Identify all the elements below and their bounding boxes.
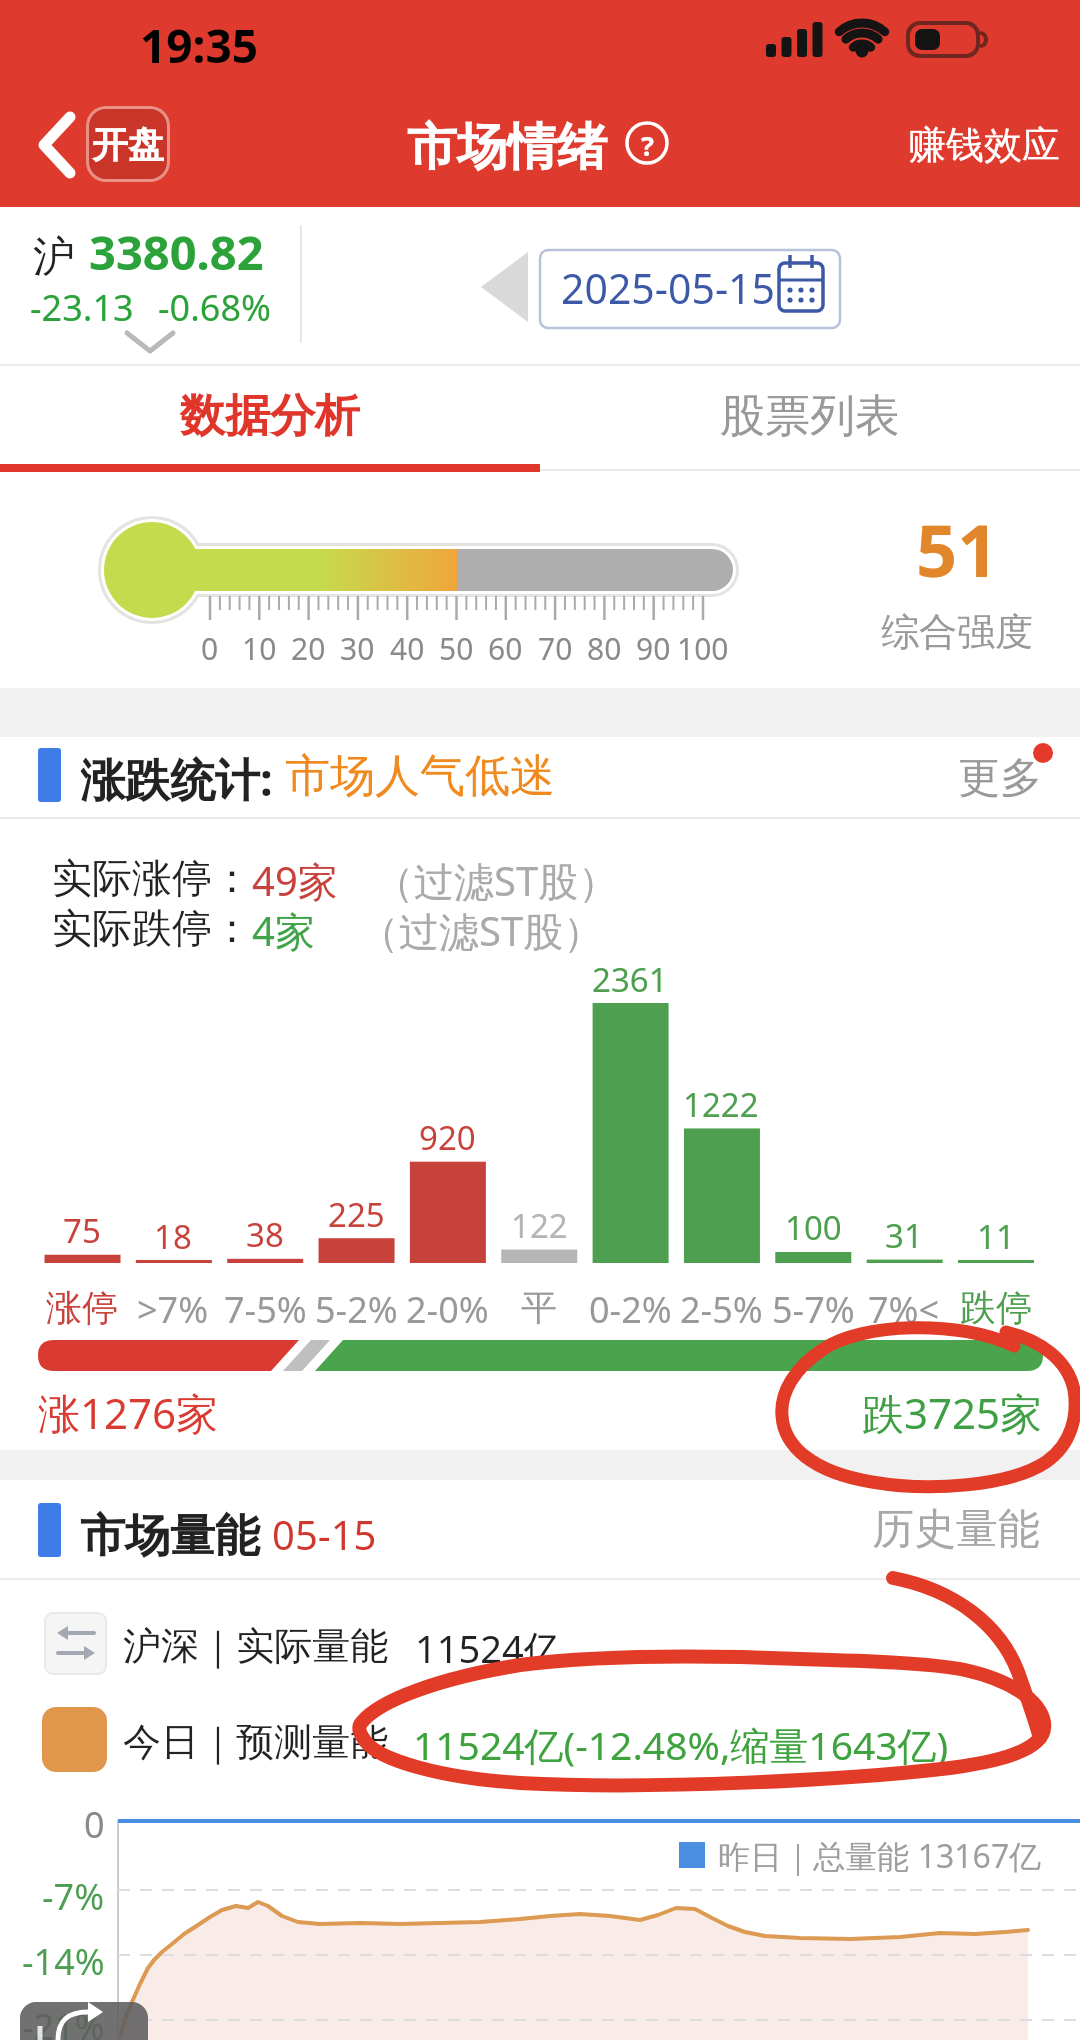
staticText: -0.68%	[158, 283, 271, 332]
staticText: 实际涨停：	[52, 853, 252, 903]
staticText: 3380.82	[89, 220, 264, 284]
staticText: >7%	[137, 1285, 209, 1334]
staticText: 31	[885, 1213, 923, 1258]
staticText: 沪深｜实际量能	[123, 1622, 389, 1670]
staticText: 涨1276家	[38, 1384, 219, 1441]
staticText: 11524亿	[415, 1622, 562, 1674]
button[interactable]: 开盘	[89, 109, 167, 179]
staticText: 跌停	[960, 1285, 1032, 1330]
staticText: 38	[246, 1212, 284, 1257]
staticText: 18	[154, 1214, 192, 1259]
staticText: 19:35	[140, 14, 259, 77]
staticText: （过滤ST股）	[374, 853, 619, 908]
staticText: 昨日｜总量能 13167亿	[718, 1834, 1042, 1878]
staticText: 跌3725家	[862, 1384, 1043, 1441]
staticText: 0	[84, 1800, 105, 1849]
staticText: （过滤ST股）	[359, 903, 604, 958]
staticText: 0-2%	[589, 1285, 672, 1334]
staticText: 数据分析	[180, 388, 360, 445]
staticText: 2361	[592, 957, 668, 1002]
staticText: 05-15	[272, 1507, 377, 1561]
staticText: 122	[511, 1203, 568, 1248]
staticText: 49家	[252, 853, 338, 908]
staticText: 90	[636, 628, 671, 669]
staticText: 平	[521, 1285, 557, 1330]
button[interactable]	[940, 737, 1080, 817]
staticText: 涨停	[46, 1285, 118, 1330]
staticText: 11	[977, 1214, 1015, 1259]
staticText: 30	[340, 628, 375, 669]
staticText: 历史量能	[872, 1503, 1040, 1556]
staticText: 7-5%	[224, 1285, 307, 1334]
staticText: 40	[390, 628, 425, 669]
staticText: 5-2%	[315, 1285, 398, 1334]
button[interactable]	[0, 1600, 1080, 1690]
button[interactable]	[0, 1697, 1080, 1787]
staticText: 2-5%	[680, 1285, 763, 1334]
staticText: -21%	[22, 2002, 105, 2040]
button[interactable]: 赚钱效应	[895, 112, 1060, 178]
staticText: 5-7%	[772, 1285, 855, 1334]
staticText: 225	[328, 1192, 385, 1237]
staticText: 0	[201, 628, 219, 669]
staticText: 70	[538, 628, 573, 669]
staticText: 4家	[252, 903, 315, 958]
staticText: -23.13	[30, 283, 134, 332]
staticText: 20	[291, 628, 326, 669]
staticText: 市场量能	[80, 1503, 272, 1564]
staticText: 51	[916, 500, 999, 598]
staticText: -7%	[42, 1872, 105, 1921]
staticText: 10	[242, 628, 277, 669]
button[interactable]: 历史量能	[860, 1495, 1060, 1565]
staticText: 920	[419, 1115, 476, 1160]
staticText: 今日｜预测量能	[123, 1718, 389, 1766]
staticText: -14%	[22, 1937, 105, 1986]
staticText: 沪	[33, 231, 75, 284]
staticText: 实际跌停：	[52, 903, 252, 953]
staticText: 50	[439, 628, 474, 669]
staticText: ?	[641, 127, 654, 164]
staticText: 75	[63, 1208, 101, 1253]
staticText: 80	[587, 628, 622, 669]
button[interactable]	[20, 100, 80, 190]
staticText: 2025-05-15	[561, 260, 776, 316]
staticText: 赚钱效应	[908, 121, 1060, 169]
staticText: 60	[488, 628, 523, 669]
staticText: 11524亿(-12.48%,缩量1643亿)	[413, 1718, 949, 1771]
staticText: 市场情绪	[407, 116, 607, 179]
button[interactable]: 2025-05-15	[540, 250, 840, 328]
staticText: 100	[677, 628, 729, 669]
staticText: 市场人气低迷	[285, 748, 555, 805]
staticText: 7%<	[868, 1285, 940, 1334]
button[interactable]: 股票列表	[540, 366, 1080, 466]
staticText: 开盘	[92, 122, 164, 167]
staticText: 更多	[958, 752, 1042, 805]
staticText: 100	[785, 1205, 842, 1250]
staticText: 涨跌统计:	[80, 748, 285, 809]
button[interactable]: 数据分析	[0, 366, 540, 466]
staticText: 1222	[683, 1082, 759, 1127]
staticText: 股票列表	[720, 388, 900, 445]
staticText: 综合强度	[881, 608, 1033, 656]
staticText: 2-0%	[406, 1285, 489, 1334]
